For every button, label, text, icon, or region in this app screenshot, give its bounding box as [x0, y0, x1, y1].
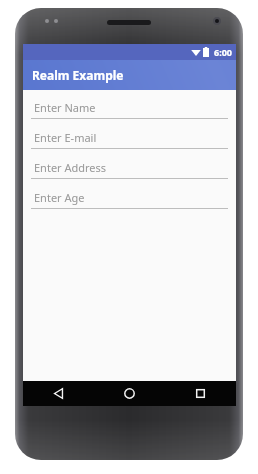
button[interactable]: Recent apps	[165, 381, 236, 406]
button[interactable]: Back	[23, 381, 94, 406]
button[interactable]: Enter Address	[31, 154, 228, 184]
staticText: 6:00	[214, 46, 232, 58]
staticText: Enter E-mail	[34, 130, 97, 145]
staticText: Enter Age	[34, 190, 85, 205]
button[interactable]: Enter Name	[31, 94, 228, 124]
staticText: Enter Name	[34, 100, 96, 115]
button[interactable]: Enter Age	[31, 184, 228, 214]
staticText: Realm Example	[32, 67, 124, 83]
button[interactable]: Home	[94, 381, 165, 406]
staticText: Enter Address	[34, 160, 107, 175]
button[interactable]: Enter E-mail	[31, 124, 228, 154]
